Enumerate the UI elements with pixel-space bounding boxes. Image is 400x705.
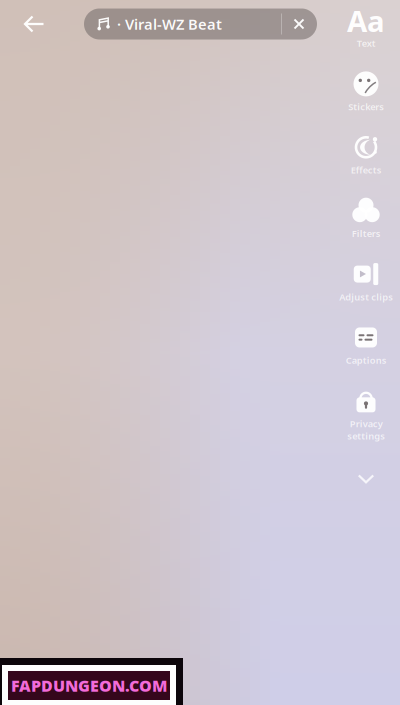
staticText: Privacy settings: [347, 417, 385, 442]
button[interactable]: Back: [12, 5, 56, 43]
staticText: Text: [356, 37, 375, 49]
staticText: Aa: [347, 1, 385, 40]
staticText: · Viral-WZ Beat: [117, 14, 222, 34]
button[interactable]: Remove sound: [282, 9, 316, 39]
staticText: Effects: [350, 164, 381, 176]
staticText: FAPDUNGEON.COM: [11, 675, 167, 696]
button[interactable]: Captions: [332, 319, 400, 371]
staticText: Stickers: [348, 100, 384, 113]
button[interactable]: Filters: [332, 192, 400, 245]
staticText: Captions: [345, 354, 386, 366]
staticText: Filters: [351, 227, 380, 240]
button[interactable]: Aa: [332, 2, 400, 54]
button[interactable]: Privacy settings: [332, 382, 400, 447]
staticText: Adjust clips: [339, 291, 393, 303]
button[interactable]: Effects: [332, 129, 400, 181]
button[interactable]: Stickers: [332, 65, 400, 118]
button[interactable]: Collapse tools: [346, 466, 386, 492]
button[interactable]: Adjust clips: [332, 256, 400, 308]
